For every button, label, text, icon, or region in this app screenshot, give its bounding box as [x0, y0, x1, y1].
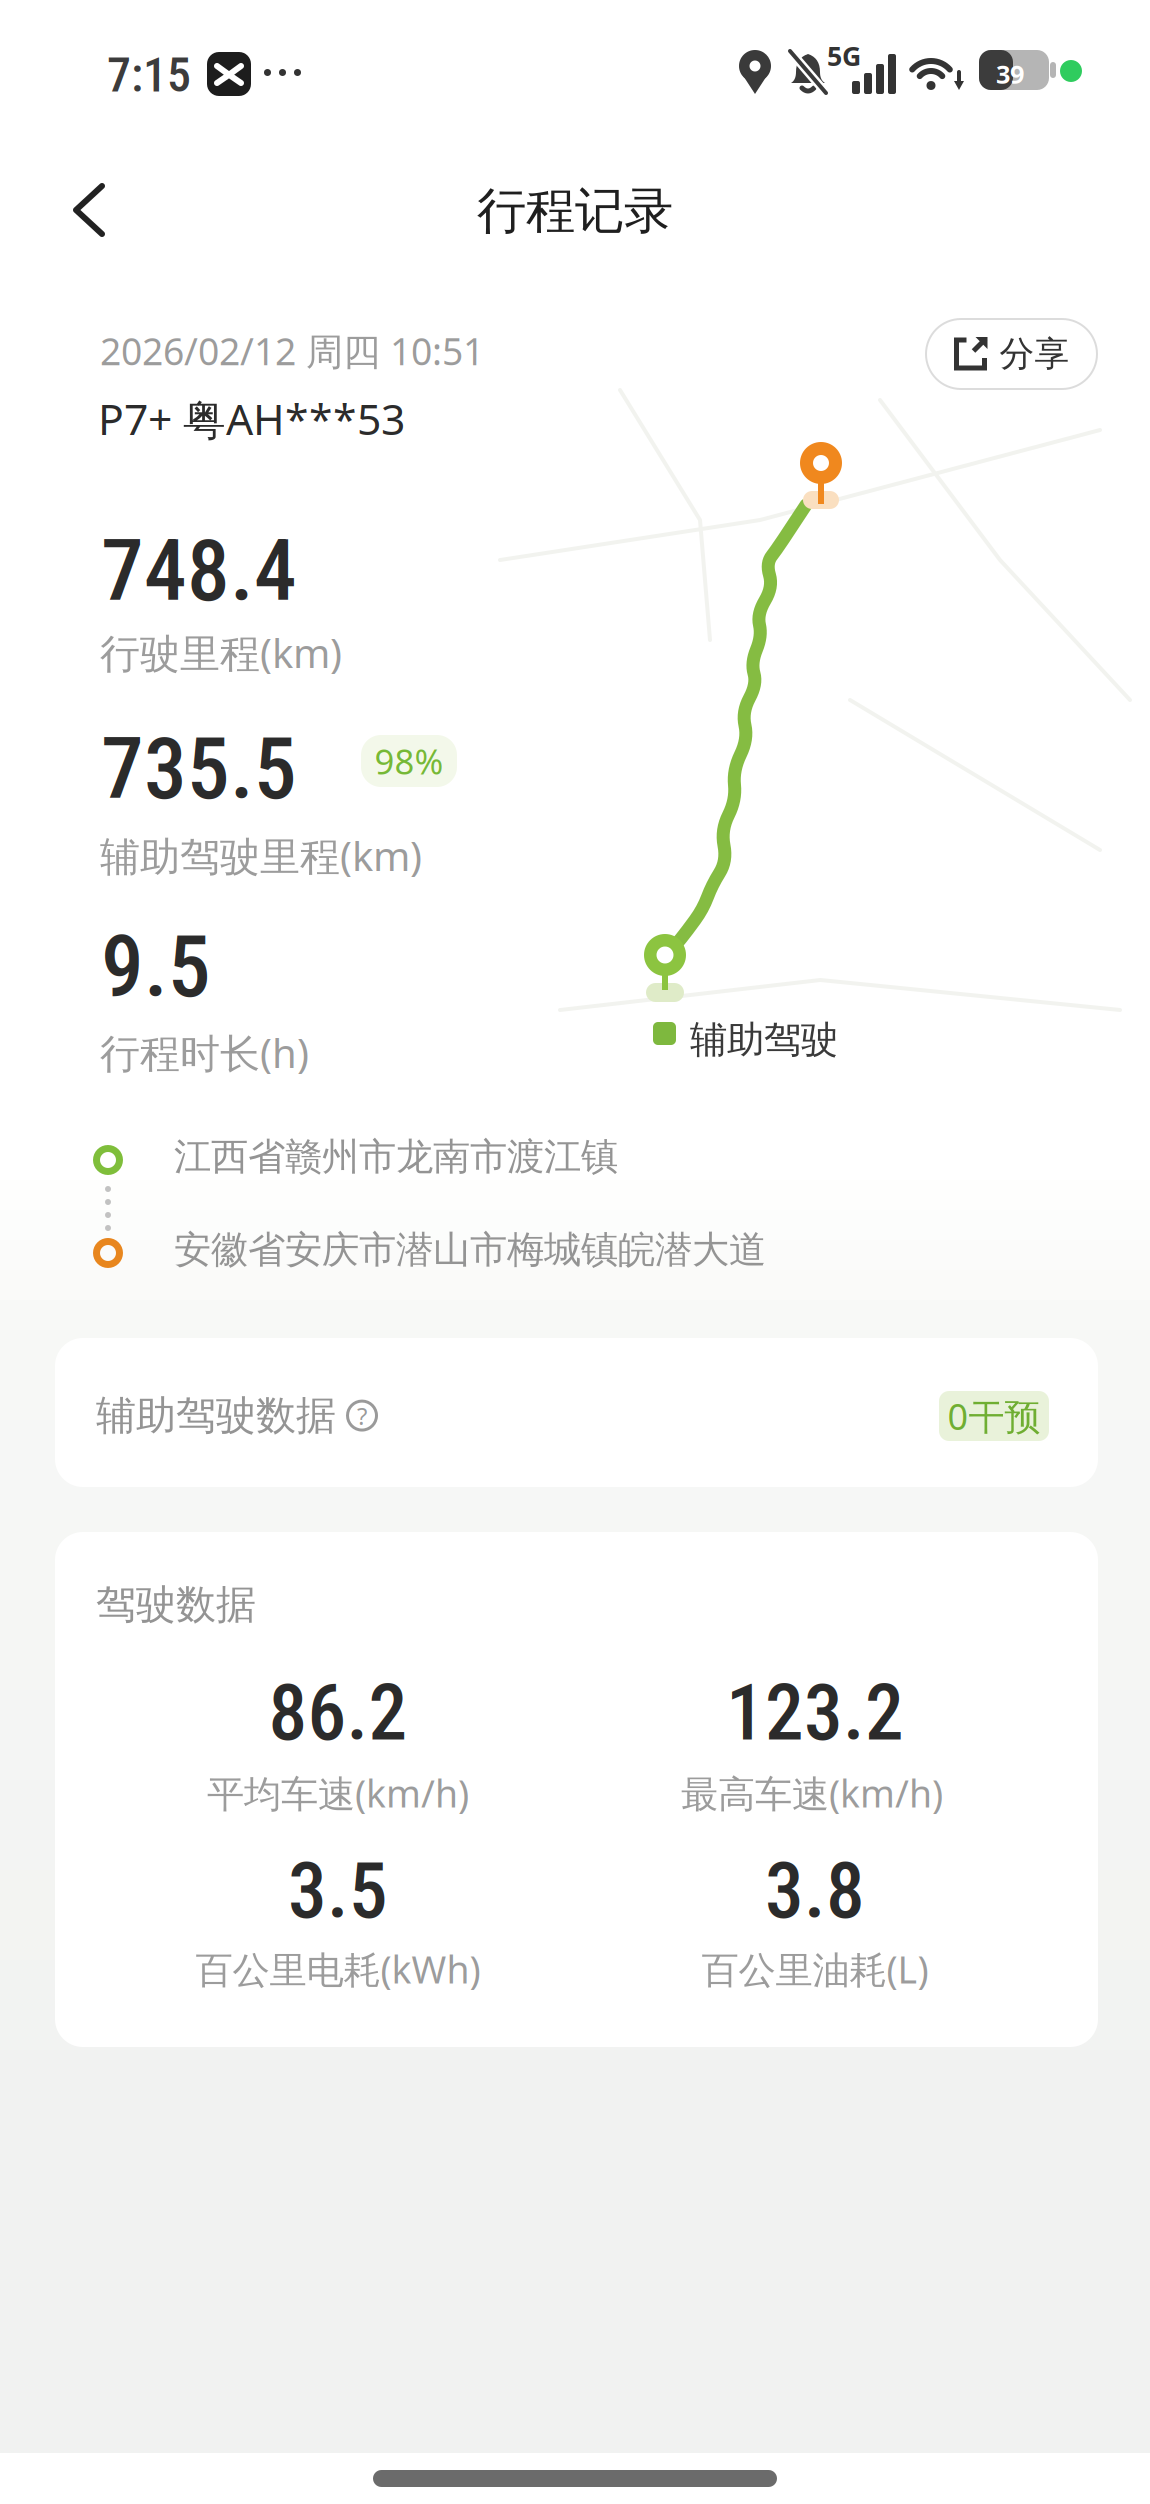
staticText: 735.5 [101, 719, 297, 819]
staticText: 5G [827, 38, 861, 73]
staticText: 百公里电耗(kWh) [195, 1944, 480, 1994]
staticText: ? [357, 1400, 367, 1431]
button[interactable]: Back [72, 184, 120, 244]
staticText: 123.2 [726, 1668, 904, 1758]
staticText: 辅助驾驶数据 [96, 1391, 336, 1440]
staticText: 最高车速(km/h) [681, 1768, 943, 1818]
staticText: 86.2 [268, 1668, 407, 1758]
staticText: 98% [374, 738, 443, 784]
staticText: 百公里油耗(L) [701, 1944, 928, 1994]
staticText: 39 [996, 57, 1024, 91]
staticText: 2026/02/12 周四 10:51 [100, 326, 484, 376]
staticText: P7+ 粤AH***53 [98, 390, 405, 447]
staticText: 行驶里程(km) [100, 626, 342, 679]
staticText: 行程时长(h) [100, 1026, 309, 1079]
button[interactable]: 分享 [925, 318, 1098, 390]
staticText: 江西省赣州市龙南市渡江镇 [174, 1134, 618, 1180]
staticText: 3.8 [765, 1846, 865, 1936]
staticText: 3.5 [288, 1846, 388, 1936]
button[interactable]: 帮助 [346, 1400, 378, 1432]
staticText: 行程记录 [477, 181, 673, 241]
staticText: 驾驶数据 [96, 1580, 256, 1629]
staticText: 辅助驾驶 [690, 1017, 838, 1063]
staticText: 0干预 [947, 1392, 1040, 1440]
staticText: 安徽省安庆市潜山市梅城镇皖潜大道 [174, 1227, 766, 1273]
staticText: 748.4 [101, 521, 297, 621]
staticText: 9.5 [101, 917, 211, 1017]
staticText: 7:15 [107, 47, 191, 103]
staticText: 分享 [999, 333, 1069, 375]
staticText: 辅助驾驶里程(km) [100, 829, 422, 882]
staticText: 平均车速(km/h) [207, 1768, 469, 1818]
